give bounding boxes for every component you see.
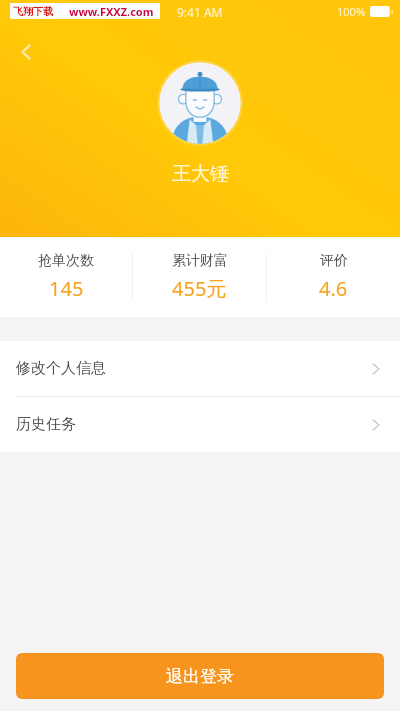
button[interactable]: 修改个人信息 (0, 341, 400, 396)
staticText: 评价 (320, 252, 348, 270)
staticText: 历史任务 (16, 415, 368, 434)
staticText: 4.6 (319, 275, 348, 302)
staticText: 退出登录 (166, 666, 234, 687)
staticText: www.FXXZ.com (69, 4, 154, 19)
staticText: 飞翔下载 (13, 5, 53, 18)
staticText: 145 (49, 275, 84, 302)
staticText: 100% (337, 4, 366, 19)
button[interactable]: 历史任务 (0, 397, 400, 452)
staticText: 王大锤 (172, 162, 229, 186)
staticText: 累计财富 (172, 252, 228, 270)
button[interactable]: 退出登录 (16, 653, 384, 699)
staticText: 9:41 AM (177, 4, 223, 20)
staticText: 抢单次数 (38, 252, 94, 270)
button[interactable]: Back (6, 32, 46, 72)
staticText: 455元 (172, 275, 227, 302)
staticText: 修改个人信息 (16, 359, 368, 378)
